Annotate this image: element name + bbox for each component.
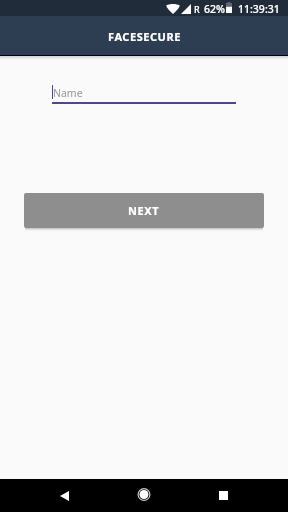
staticText: 11:39:31 xyxy=(238,2,280,16)
button[interactable]: Home xyxy=(120,479,168,512)
staticText: Name xyxy=(53,86,83,100)
staticText: FACESECURE xyxy=(108,29,181,44)
staticText: NEXT xyxy=(128,203,160,218)
button[interactable]: Recent apps xyxy=(199,479,247,512)
button[interactable]: NEXT xyxy=(24,193,264,228)
staticText: 62% xyxy=(204,2,225,16)
button[interactable]: Name xyxy=(52,82,236,104)
button[interactable]: Back xyxy=(40,479,89,512)
staticText: R xyxy=(194,3,200,15)
